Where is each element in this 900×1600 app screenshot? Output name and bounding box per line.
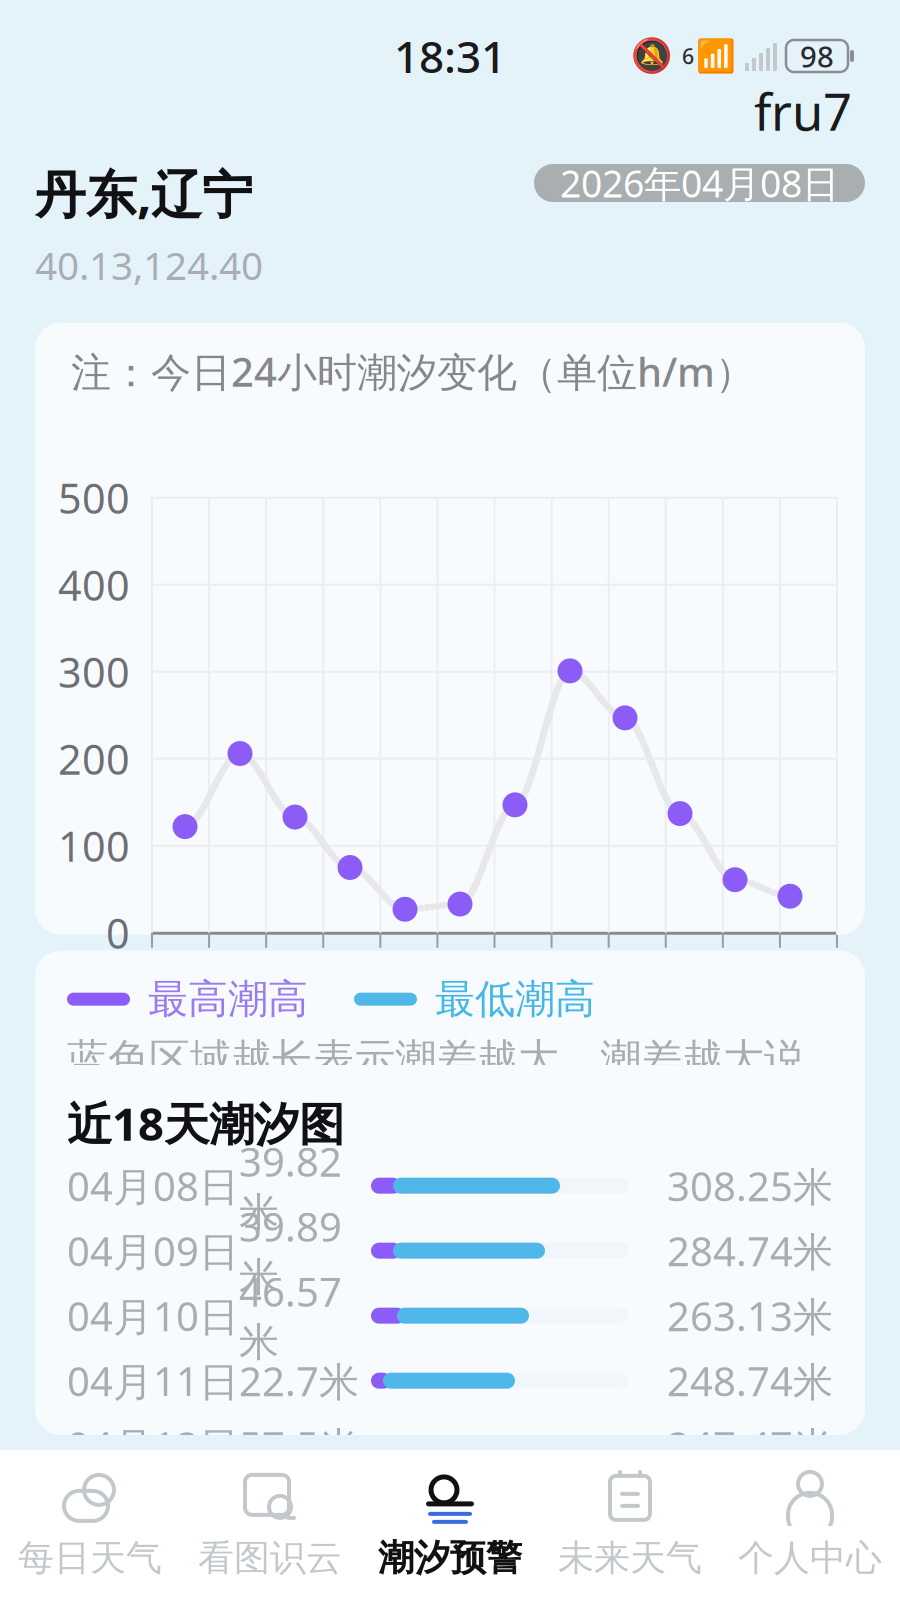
staticText: 6 [682,42,694,70]
staticText: 最低潮高 [435,975,595,1024]
staticText: 04月12日 [67,1419,239,1472]
staticText: 到海岸的渔获越多，能极大提升赶海的收获概率 [67,1145,805,1247]
button[interactable]: 个人中心 [720,1450,900,1600]
staticText: 18:31 [394,27,506,85]
staticText: 500 [58,470,130,525]
staticText: 12 [491,943,539,998]
staticText: 看图识云 [198,1536,342,1580]
staticText: 39.89米 [239,1200,342,1302]
staticText: 284.74米 [667,1224,833,1277]
button[interactable]: 未来天气 [540,1450,720,1600]
staticText: 04月09日 [67,1224,239,1277]
button[interactable]: 04月11日 [35,1348,865,1413]
staticText: 46.57米 [239,1265,342,1367]
staticText: 00 [161,943,209,998]
staticText: 个人中心 [738,1536,882,1580]
staticText: 每日天气 [18,1536,162,1580]
staticText: 04月08日 [67,1159,239,1212]
button[interactable]: 04月08日 [35,1153,865,1218]
staticText: 最高潮高 [148,975,308,1024]
staticText: 📶 [696,38,736,74]
staticText: 06 [326,943,374,998]
staticText: 14 [546,943,594,998]
staticText: 丹东,辽宁 [35,160,253,227]
staticText: 98 [800,36,834,75]
button[interactable]: 04月09日 [35,1218,865,1283]
staticText: 04月10日 [67,1289,239,1342]
staticText: 39.82米 [239,1135,342,1237]
staticText: 02 [216,943,264,998]
staticText: 蓝色区域越长表示潮差越大，潮差越大说明被潮汐带 [67,1034,805,1135]
staticText: 2026年04月08日 [560,158,839,208]
staticText: 200 [58,731,130,786]
staticText: 20 [711,943,759,998]
staticText: 注：今日24小时潮汐变化（单位h/m） [71,345,755,398]
staticText: 10 [436,943,484,998]
staticText: 08 [381,943,429,998]
staticText: 57.5米 [239,1419,359,1472]
staticText: 潮汐预警 [378,1536,522,1580]
staticText: 40.13,124.40 [35,239,263,291]
staticText: 248.74米 [667,1354,833,1407]
staticText: 100 [58,818,130,873]
staticText: 0 [106,905,130,960]
staticText: 近18天潮汐图 [67,1093,344,1153]
staticText: 16 [601,943,649,998]
staticText: 308.25米 [667,1159,833,1212]
staticText: 22 [766,943,814,998]
staticText: 247.47米 [667,1419,833,1472]
button[interactable]: 04月12日 [35,1413,865,1478]
staticText: 300 [58,644,130,699]
staticText: fru7 [754,77,852,145]
staticText: 263.13米 [667,1289,833,1342]
button[interactable]: 每日天气 [0,1450,180,1600]
staticText: 04月11日 [67,1354,239,1407]
button[interactable]: 潮汐预警 [360,1450,540,1600]
staticText: 400 [58,557,130,612]
button[interactable]: 看图识云 [180,1450,360,1600]
button[interactable]: 04月10日 [35,1283,865,1348]
staticText: 22.7米 [239,1354,359,1407]
staticText: 🔕 [631,37,673,75]
staticText: 未来天气 [558,1536,702,1580]
staticText: 18 [656,943,704,998]
staticText: 04 [271,943,319,998]
button[interactable]: 2026年04月08日 [534,164,865,202]
